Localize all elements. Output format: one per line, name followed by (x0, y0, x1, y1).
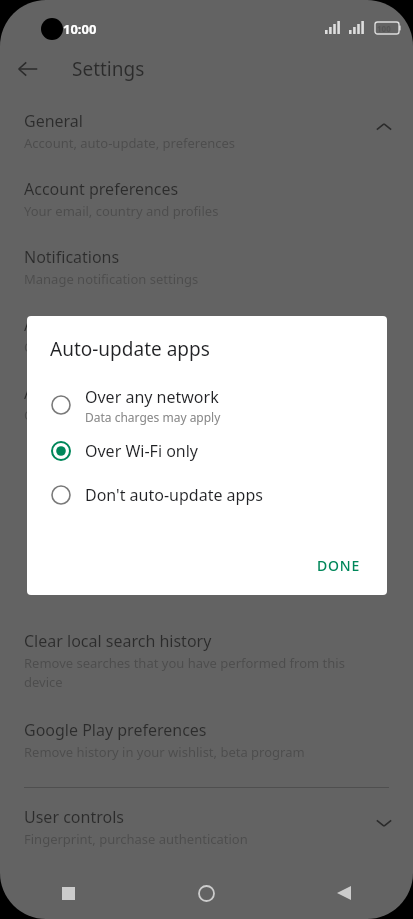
button[interactable]: Over Wi-Fi only (27, 429, 387, 473)
staticText: Data charges may apply (85, 409, 221, 425)
staticText: Notifications (24, 246, 120, 268)
staticText: Remove history in your wishlist, beta pr… (24, 743, 305, 761)
button[interactable]: DONE (307, 550, 371, 581)
button[interactable]: Account preferences (0, 176, 413, 222)
staticText: General (24, 110, 83, 132)
button[interactable]: Home (137, 867, 275, 919)
button[interactable]: Notifications (0, 244, 413, 290)
staticText: Settings (72, 56, 145, 82)
staticText: Over any network (24, 406, 133, 424)
staticText: Over Wi-Fi only (85, 440, 199, 462)
staticText: Account, auto-update, preferences (24, 134, 236, 152)
staticText: Account preferences (24, 178, 179, 200)
staticText: DONE (317, 556, 361, 575)
staticText: Over any network (85, 386, 219, 408)
staticText: Clear local search history (24, 630, 212, 652)
staticText: Your email, country and profiles (24, 202, 219, 220)
staticText: 10:00 (63, 20, 97, 38)
button[interactable]: Auto-update apps (0, 312, 413, 358)
staticText: Fingerprint, purchase authentication (24, 830, 248, 848)
button[interactable]: Recent apps (0, 867, 137, 919)
staticText: 100 (377, 23, 391, 34)
button[interactable]: User controls (0, 804, 413, 850)
button[interactable]: Clear local search history (0, 628, 413, 693)
button[interactable]: Don't auto-update apps (27, 473, 387, 517)
staticText: Google Play preferences (24, 719, 207, 741)
button[interactable]: Google Play preferences (0, 717, 413, 763)
button[interactable]: General (0, 108, 413, 154)
button[interactable]: Back (10, 51, 46, 87)
button[interactable]: Back (275, 867, 413, 919)
staticText: Don't auto-update apps (85, 484, 263, 506)
staticText: Auto-update apps (50, 336, 210, 362)
staticText: Over Wi-Fi only (24, 338, 116, 356)
staticText: Manage notification settings (24, 270, 199, 288)
staticText: User controls (24, 806, 124, 828)
staticText: Remove searches that you have performed … (24, 654, 345, 691)
button[interactable]: Over any network (27, 381, 387, 429)
staticText: App download preference (24, 382, 219, 404)
staticText: Auto-update apps (24, 314, 159, 336)
button[interactable]: App download preference (0, 380, 413, 426)
